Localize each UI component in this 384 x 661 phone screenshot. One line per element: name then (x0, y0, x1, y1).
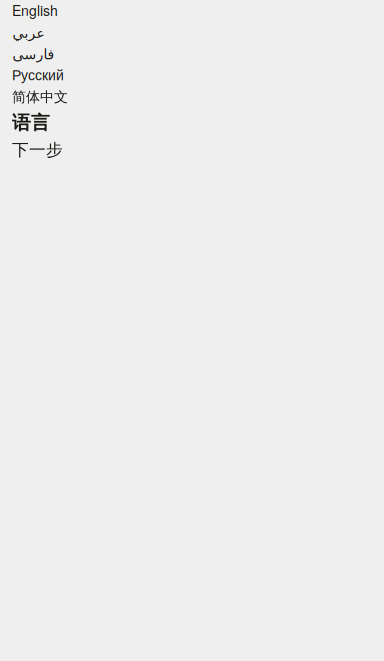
staticText: 简体中文 (12, 88, 68, 106)
staticText: English (12, 0, 58, 20)
staticText: 下一步 (12, 139, 63, 160)
staticText: فارسی (12, 46, 54, 63)
staticText: 语言 (12, 111, 50, 134)
staticText: Русский (12, 68, 64, 83)
staticText: عربي (12, 25, 44, 41)
